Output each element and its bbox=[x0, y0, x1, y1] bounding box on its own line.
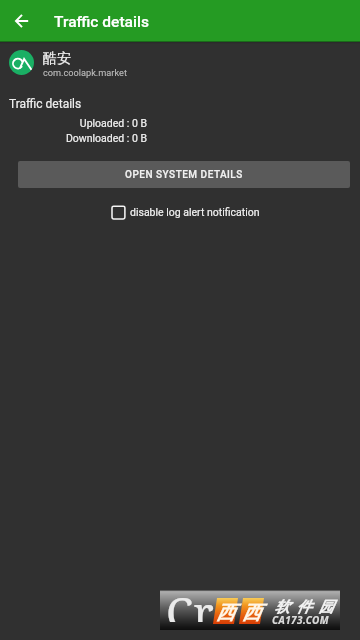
staticText: Traffic details bbox=[9, 97, 82, 111]
staticText: com.coolapk.market bbox=[43, 67, 127, 78]
button[interactable]: 酷安 bbox=[0, 42, 360, 86]
staticText: 西 bbox=[242, 601, 261, 625]
staticText: Downloaded : 0 B bbox=[0, 132, 147, 144]
staticText: 软件园 bbox=[271, 598, 337, 617]
staticText: disable log alert notification bbox=[130, 206, 260, 218]
staticText: Traffic details bbox=[54, 13, 149, 31]
staticText: 西 bbox=[216, 601, 235, 625]
staticText: OPEN SYSTEM DETAILS bbox=[125, 169, 243, 181]
button[interactable]: OPEN SYSTEM DETAILS bbox=[18, 161, 350, 188]
staticText: CA173.COM bbox=[272, 613, 329, 627]
staticText: Cr bbox=[166, 582, 214, 622]
button[interactable]: Back bbox=[8, 7, 36, 35]
button[interactable]: disable log alert notification bbox=[111, 204, 260, 220]
staticText: 酷安 bbox=[43, 50, 71, 68]
staticText: Uploaded : 0 B bbox=[0, 117, 147, 129]
